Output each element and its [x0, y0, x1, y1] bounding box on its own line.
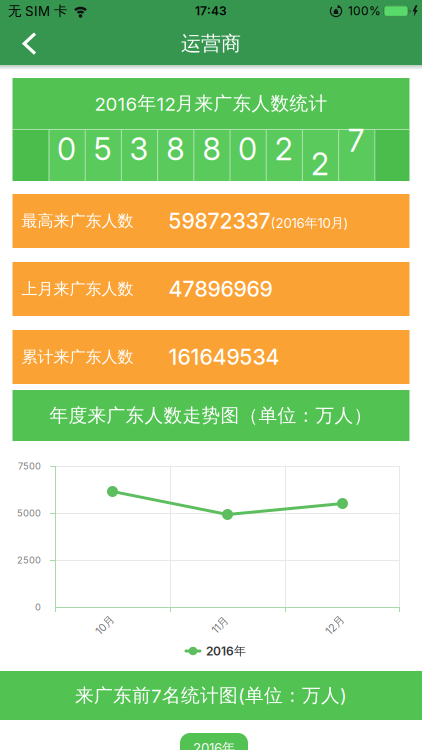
staticText: 7	[348, 123, 365, 159]
staticText: 2016年	[206, 644, 246, 658]
staticText: 无 SIM 卡	[8, 3, 67, 19]
button[interactable]	[0, 23, 37, 64]
staticText: 3	[129, 131, 148, 167]
staticText: 2016年	[193, 740, 235, 750]
staticText: 7500	[18, 460, 41, 471]
staticText: 0	[238, 131, 257, 167]
staticText: 0	[35, 601, 41, 612]
staticText: 最高来广东人数	[21, 211, 133, 231]
staticText: 年度来广东人数走势图（单位：万人）	[49, 404, 372, 427]
staticText: 11月	[210, 618, 229, 631]
staticText: 来广东前7名统计图(单位：万人)	[75, 684, 347, 707]
staticText: 161649534	[168, 344, 279, 370]
button[interactable]: 2016年	[180, 733, 248, 750]
staticText: 10月	[94, 618, 116, 631]
staticText: 8	[166, 131, 184, 167]
staticText: (2016年10月)	[270, 215, 348, 231]
staticText: 5000	[17, 507, 41, 518]
staticText: 47896969	[168, 276, 272, 302]
staticText: 2016年12月来广东人数统计	[94, 92, 327, 115]
staticText: 运营商	[181, 31, 241, 56]
staticText: 0	[57, 131, 76, 167]
staticText: 上月来广东人数	[21, 279, 133, 299]
staticText: 2	[311, 146, 329, 182]
staticText: 累计来广东人数	[21, 347, 133, 367]
staticText: 2500	[17, 554, 41, 565]
staticText: 5	[94, 131, 112, 167]
staticText: 12月	[324, 618, 346, 631]
staticText: 17:43	[195, 4, 227, 18]
staticText: 100%	[348, 4, 381, 18]
staticText: 59872337	[168, 208, 270, 234]
staticText: 8	[202, 131, 220, 167]
staticText: 2	[275, 131, 293, 167]
